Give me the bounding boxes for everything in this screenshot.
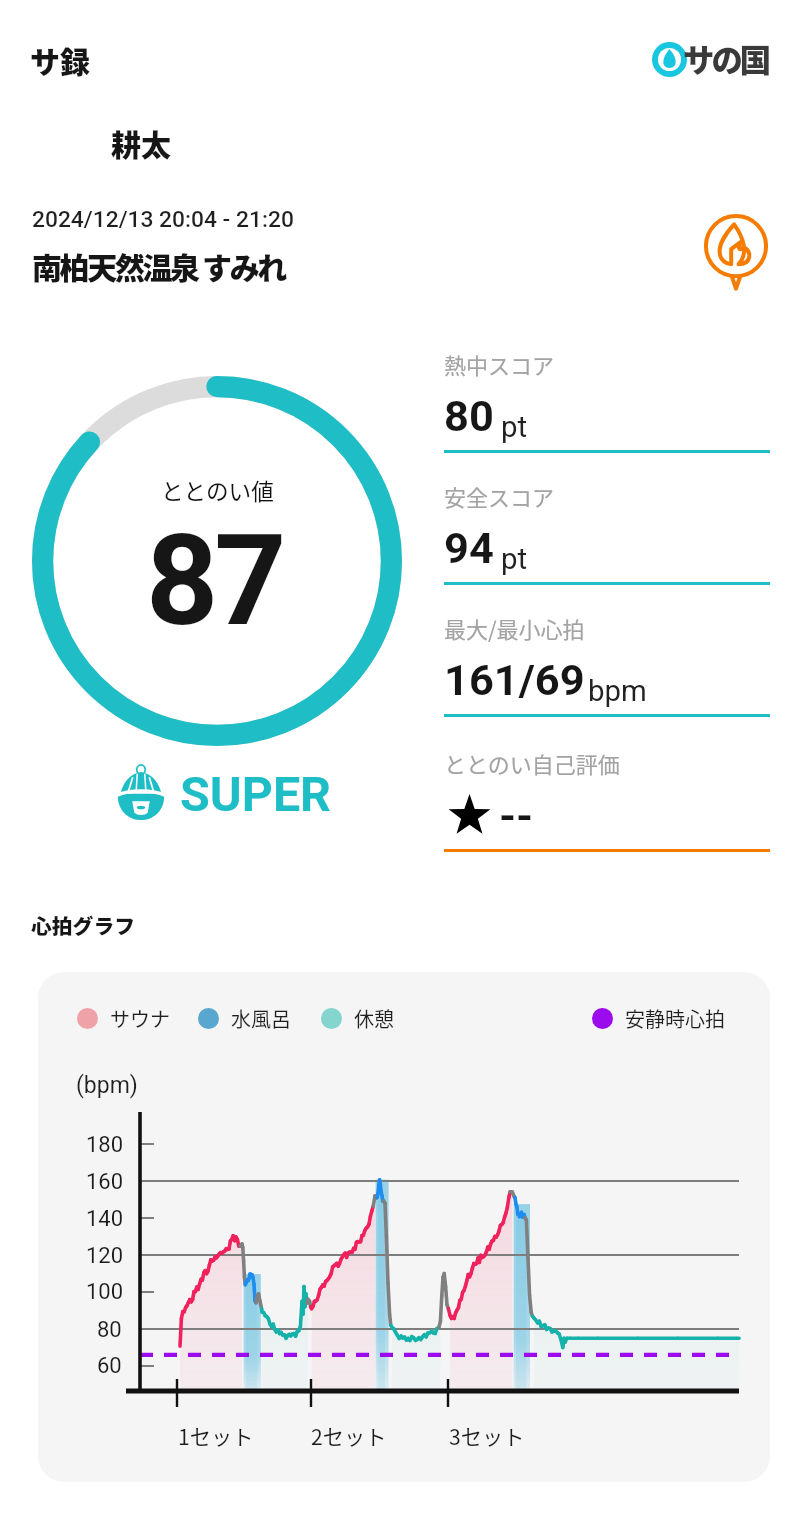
staticText: サウナ [110,1004,170,1033]
button[interactable]: サの国 [648,40,772,80]
staticText: 2セット [311,1420,387,1451]
staticText: 160 [86,1169,124,1195]
staticText: 80 [444,391,494,442]
staticText: 2024/12/13 20:04 - 21:20 [32,206,294,233]
staticText: 180 [86,1132,124,1158]
staticText: 休憩 [354,1004,394,1033]
staticText: pt [501,542,528,576]
staticText: 161/69 [444,655,585,706]
staticText: 1セット [178,1420,254,1451]
staticText: bpm [588,674,647,708]
staticText: サの国 [683,36,769,76]
staticText: SUPER [180,766,332,823]
staticText: 心拍グラフ [31,910,135,940]
staticText: 熱中スコア [444,348,555,380]
button[interactable]: Sauna venue [704,214,768,289]
staticText: 水風呂 [231,1004,291,1033]
staticText: 3セット [449,1420,525,1451]
staticText: 120 [86,1243,124,1269]
staticText: 87 [146,507,283,655]
staticText: (bpm) [76,1072,138,1099]
staticText: 80 [97,1317,122,1343]
staticText: 最大/最小心拍 [444,612,585,644]
staticText: 94 [444,523,494,574]
staticText: 安全スコア [444,480,555,512]
staticText: 安静時心拍 [625,1004,725,1033]
staticText: 140 [86,1206,124,1232]
staticText: 100 [86,1279,124,1305]
staticText: ととのい自己評価 [444,747,620,779]
staticText: 60 [97,1353,122,1379]
staticText: 南柏天然温泉 すみれ [32,244,285,287]
staticText: -- [499,791,534,842]
staticText: pt [501,410,528,444]
staticText: サ録 [30,38,90,81]
staticText: 耕太 [111,121,171,164]
staticText: ととのい値 [161,474,274,507]
